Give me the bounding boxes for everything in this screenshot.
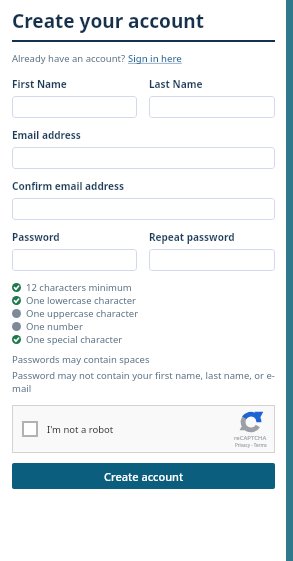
staticText: reCAPTCHA: [234, 434, 267, 442]
button[interactable]: [12, 249, 137, 271]
staticText: Passwords may contain spaces: [12, 353, 150, 366]
staticText: Password: [12, 230, 60, 244]
staticText: Sign in here: [128, 52, 182, 65]
staticText: One lowercase character: [26, 294, 137, 307]
staticText: Create account: [104, 469, 184, 484]
staticText: Email address: [12, 128, 81, 142]
staticText: Last Name: [149, 77, 203, 91]
button[interactable]: I'm not a robot checkbox: [22, 421, 38, 437]
staticText: One uppercase character: [26, 307, 139, 320]
staticText: I'm not a robot: [47, 423, 114, 436]
staticText: 12 characters minimum: [26, 281, 132, 294]
staticText: Create your account: [12, 8, 204, 34]
button[interactable]: [12, 147, 275, 169]
button[interactable]: [12, 198, 275, 220]
button[interactable]: Create account: [12, 463, 275, 489]
staticText: Confirm email address: [12, 179, 125, 193]
staticText: Repeat password: [149, 230, 235, 244]
staticText: Privacy - Terms: [235, 442, 267, 448]
button[interactable]: [149, 96, 275, 118]
staticText: One number: [26, 320, 83, 333]
button[interactable]: [12, 96, 137, 118]
button[interactable]: [149, 249, 275, 271]
staticText: First Name: [12, 77, 67, 91]
staticText: Password may not contain your first name…: [12, 369, 275, 395]
staticText: One special character: [26, 333, 123, 346]
staticText: Already have an account?: [12, 52, 128, 65]
button[interactable]: Sign in here: [128, 52, 182, 65]
